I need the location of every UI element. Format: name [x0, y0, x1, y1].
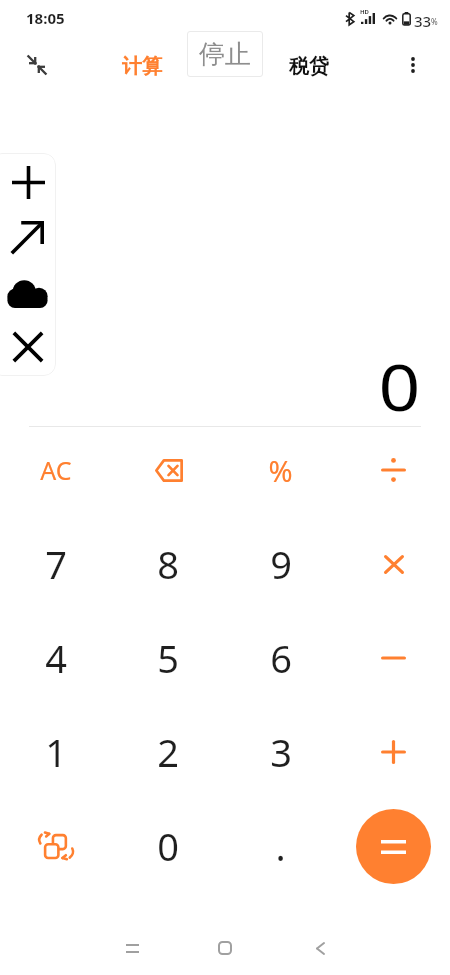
button[interactable]: More options	[393, 45, 433, 85]
button[interactable]: Subtract	[337, 611, 450, 705]
button[interactable]: 0	[112, 799, 224, 893]
button[interactable]: 1	[0, 705, 112, 799]
other: Add	[381, 740, 406, 764]
staticText: 3	[270, 726, 292, 778]
staticText: 0	[157, 820, 179, 872]
staticText: 停止	[199, 38, 251, 71]
button[interactable]: Add	[11, 165, 45, 199]
button[interactable]: Convert units	[0, 799, 112, 893]
button[interactable]: Close	[11, 330, 44, 363]
button[interactable]: 4	[0, 611, 112, 705]
button[interactable]: Equals	[356, 809, 431, 884]
button[interactable]: 6	[224, 611, 337, 705]
button[interactable]: Multiply	[337, 517, 450, 611]
button[interactable]: Home	[205, 928, 245, 968]
button[interactable]: 7	[0, 517, 112, 611]
staticText: 33	[414, 11, 432, 31]
staticText: 8	[157, 538, 179, 590]
button[interactable]: 停止	[187, 31, 263, 77]
staticText: 18:05	[26, 8, 65, 28]
button[interactable]: 8	[112, 517, 224, 611]
staticText: 1	[45, 726, 67, 778]
staticText: 2	[157, 726, 179, 778]
button[interactable]: AC	[0, 423, 112, 517]
staticText: %	[268, 451, 293, 490]
button[interactable]: 3	[224, 705, 337, 799]
other: Subtract	[381, 656, 406, 660]
staticText: HD	[360, 8, 369, 16]
staticText: 0	[378, 343, 421, 425]
staticText: 6	[270, 632, 292, 684]
staticText: %	[431, 16, 438, 27]
staticText: 税贷	[289, 54, 329, 79]
other: Convert units	[39, 832, 73, 860]
button[interactable]: 5	[112, 611, 224, 705]
button[interactable]: Divide	[337, 423, 450, 517]
staticText: 4	[45, 632, 67, 684]
staticText: AC	[40, 453, 72, 487]
staticText: 7	[45, 538, 67, 590]
other: Divide	[381, 458, 406, 482]
staticText: 9	[270, 538, 292, 590]
button[interactable]: Add	[337, 705, 450, 799]
other: Multiply	[384, 555, 404, 574]
button[interactable]: 计算	[118, 50, 166, 83]
staticText: 5	[157, 632, 179, 684]
staticText: .	[275, 820, 286, 872]
button[interactable]: 9	[224, 517, 337, 611]
button[interactable]: %	[224, 423, 337, 517]
button[interactable]: Cloud	[7, 278, 48, 308]
button[interactable]: Backspace	[112, 423, 224, 517]
button[interactable]: Back	[300, 928, 340, 968]
button[interactable]: 2	[112, 705, 224, 799]
button[interactable]: Collapse	[17, 45, 57, 85]
button[interactable]: Expand	[9, 220, 45, 256]
button[interactable]: Recents	[112, 928, 152, 968]
other: Backspace	[154, 459, 183, 482]
button[interactable]: 税贷	[285, 50, 333, 83]
button[interactable]: .	[224, 799, 337, 893]
staticText: 计算	[122, 54, 162, 79]
